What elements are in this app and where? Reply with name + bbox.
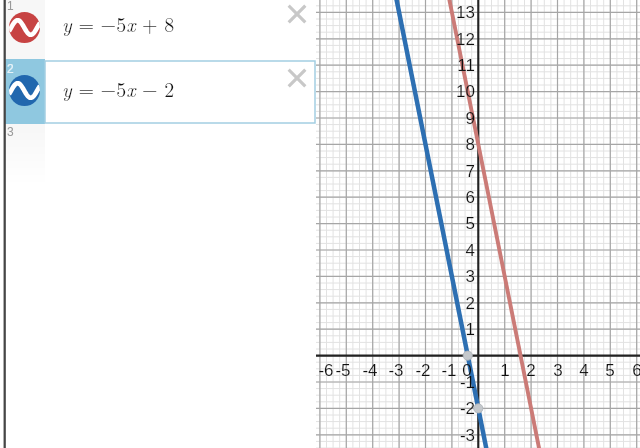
staticText: 3 bbox=[7, 125, 14, 138]
staticText: 7 bbox=[415, 162, 475, 181]
staticText: 12 bbox=[415, 30, 475, 49]
staticText: 3 bbox=[415, 267, 475, 286]
staticText: -3 bbox=[415, 426, 475, 445]
staticText: 1 bbox=[7, 0, 14, 12]
staticText: 13 bbox=[415, 3, 475, 22]
staticText: 2 bbox=[415, 294, 475, 313]
staticText: 1 bbox=[415, 320, 475, 339]
staticText: 1 bbox=[475, 361, 535, 380]
staticText: 5 bbox=[415, 214, 475, 233]
staticText: -2 bbox=[415, 399, 475, 418]
staticText: 2 bbox=[501, 361, 561, 380]
staticText: -6 bbox=[296, 361, 356, 380]
staticText: 6 bbox=[415, 188, 475, 207]
staticText: 11 bbox=[415, 56, 475, 75]
staticText: 8 bbox=[415, 135, 475, 154]
button[interactable]: 1 bbox=[0, 0, 316, 59]
staticText: 9 bbox=[415, 109, 475, 128]
button[interactable]: 3 bbox=[0, 124, 316, 184]
staticText: 4 bbox=[554, 361, 614, 380]
staticText: y = −5x + 8 bbox=[62, 9, 175, 37]
button[interactable]: Delete expression 2 bbox=[288, 69, 306, 87]
staticText: 5 bbox=[580, 361, 640, 380]
staticText: 2 bbox=[7, 62, 14, 75]
staticText: 4 bbox=[415, 241, 475, 260]
staticText: y = −5x − 2 bbox=[62, 74, 175, 102]
staticText: -1 bbox=[419, 361, 479, 380]
staticText: -4 bbox=[340, 361, 400, 380]
staticText: 6 bbox=[607, 361, 640, 380]
button[interactable]: Delete expression 1 bbox=[288, 5, 306, 23]
staticText: -2 bbox=[393, 361, 453, 380]
staticText: 3 bbox=[528, 361, 588, 380]
staticText: -3 bbox=[366, 361, 426, 380]
staticText: 0 bbox=[437, 361, 497, 380]
staticText: -1 bbox=[415, 373, 475, 392]
staticText: 10 bbox=[415, 82, 475, 101]
staticText: -5 bbox=[313, 361, 373, 380]
